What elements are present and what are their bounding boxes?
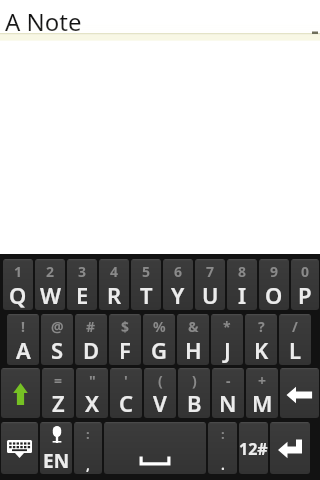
staticText: L — [289, 335, 302, 365]
staticText: 1 — [14, 262, 23, 281]
staticText: W — [40, 280, 61, 310]
staticText: P — [298, 280, 312, 310]
staticText: G — [151, 335, 167, 365]
button[interactable]: X — [76, 368, 108, 418]
button[interactable]: V — [144, 368, 176, 418]
staticText: = — [54, 371, 63, 390]
button[interactable]: 12# — [239, 422, 268, 474]
staticText: U — [202, 280, 219, 310]
staticText: & — [188, 317, 199, 336]
button[interactable]: G — [143, 314, 175, 365]
staticText: 2 — [46, 262, 55, 281]
button[interactable]: Y — [163, 259, 193, 310]
button[interactable]: I — [227, 259, 257, 310]
staticText: 0 — [301, 262, 310, 281]
staticText: 12# — [239, 438, 268, 460]
staticText: S — [51, 335, 64, 365]
staticText: N — [219, 388, 237, 418]
staticText: I — [238, 280, 247, 310]
button[interactable]: T — [131, 259, 161, 310]
staticText: . — [221, 455, 225, 474]
staticText: 7 — [206, 262, 215, 281]
staticText: Q — [9, 280, 27, 310]
button[interactable]: M — [246, 368, 278, 418]
staticText: @ — [51, 317, 64, 336]
button[interactable]: B — [178, 368, 210, 418]
button[interactable]: N — [212, 368, 244, 418]
staticText: R — [107, 280, 122, 310]
button[interactable]: Q — [3, 259, 33, 310]
staticText: , — [86, 455, 90, 474]
staticText: T — [140, 280, 153, 310]
staticText: 9 — [270, 262, 279, 281]
button[interactable]: H — [177, 314, 209, 365]
staticText: * — [223, 317, 231, 336]
staticText: $ — [121, 317, 130, 336]
button[interactable]: R — [99, 259, 129, 310]
staticText: ( — [158, 371, 163, 390]
staticText: O — [265, 280, 283, 310]
staticText: E — [76, 280, 89, 310]
button[interactable]: W — [35, 259, 65, 310]
staticText: ) — [192, 371, 197, 390]
staticText: F — [119, 335, 131, 365]
button[interactable]: Shift — [1, 368, 40, 418]
button[interactable]: . — [208, 422, 237, 474]
staticText: B — [187, 388, 202, 418]
staticText: Y — [171, 280, 185, 310]
button[interactable]: K — [245, 314, 277, 365]
staticText: - — [226, 371, 231, 390]
staticText: 5 — [142, 262, 151, 281]
staticText: + — [258, 371, 267, 390]
staticText: EN — [43, 448, 70, 474]
staticText: A Note — [5, 5, 82, 38]
staticText: ? — [258, 317, 265, 336]
button[interactable]: Backspace — [280, 368, 319, 418]
staticText: M — [252, 388, 273, 418]
button[interactable]: F — [109, 314, 141, 365]
button[interactable]: L — [279, 314, 311, 365]
staticText: 6 — [174, 262, 183, 281]
button[interactable]: C — [110, 368, 142, 418]
button[interactable]: D — [75, 314, 107, 365]
staticText: V — [153, 388, 167, 418]
staticText: H — [185, 335, 202, 365]
staticText: K — [254, 335, 269, 365]
staticText: ' — [124, 371, 128, 390]
staticText: 3 — [78, 262, 87, 281]
button[interactable]: Enter — [270, 422, 310, 474]
button[interactable]: , — [74, 422, 102, 474]
button[interactable]: Switch keyboard — [1, 422, 38, 474]
staticText: Z — [52, 388, 65, 418]
button[interactable]: S — [41, 314, 73, 365]
button[interactable]: Space — [104, 422, 206, 474]
button[interactable]: U — [195, 259, 225, 310]
button[interactable]: A — [7, 314, 39, 365]
staticText: A — [16, 335, 31, 365]
staticText: / — [292, 317, 298, 336]
staticText: 4 — [110, 262, 119, 281]
staticText: X — [85, 388, 100, 418]
staticText: " — [89, 371, 96, 390]
button[interactable]: J — [211, 314, 243, 365]
button[interactable]: Z — [42, 368, 74, 418]
staticText: # — [86, 317, 96, 336]
staticText: % — [153, 317, 166, 336]
staticText: : — [86, 425, 90, 443]
button[interactable]: Language — [40, 422, 72, 474]
staticText: : — [221, 425, 225, 443]
button[interactable]: P — [291, 259, 319, 310]
staticText: ! — [21, 317, 25, 336]
staticText: D — [83, 335, 100, 365]
staticText: J — [224, 335, 231, 365]
button[interactable]: E — [67, 259, 97, 310]
staticText: C — [119, 388, 134, 418]
staticText: 8 — [238, 262, 247, 281]
button[interactable]: O — [259, 259, 289, 310]
